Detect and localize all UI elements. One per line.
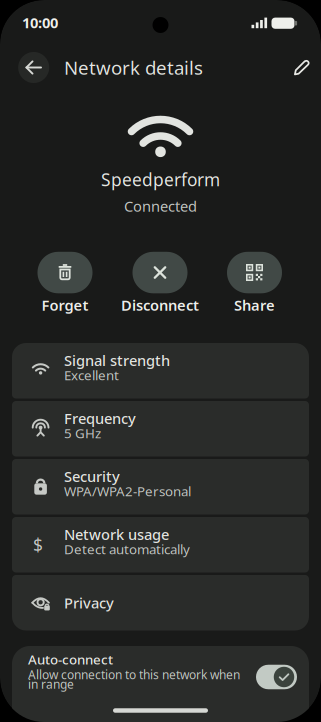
button[interactable]: Auto-connect bbox=[256, 665, 297, 689]
staticText: Privacy bbox=[64, 593, 114, 612]
staticText: in range bbox=[28, 676, 74, 692]
button[interactable]: Share bbox=[227, 252, 282, 315]
staticText: Auto-connect bbox=[28, 650, 113, 668]
button[interactable]: $ bbox=[12, 517, 309, 572]
button[interactable]: Signal strength bbox=[12, 343, 309, 398]
staticText: Excellent bbox=[64, 366, 119, 384]
button[interactable]: Edit bbox=[285, 51, 317, 83]
button[interactable]: Frequency bbox=[12, 401, 309, 456]
staticText: Network details bbox=[64, 55, 203, 80]
staticText: Allow connection to this network when bbox=[28, 667, 240, 683]
button[interactable]: Security bbox=[12, 459, 309, 514]
button[interactable]: Disconnect bbox=[121, 252, 199, 315]
button[interactable]: Forget bbox=[37, 252, 92, 315]
staticText: 5 GHz bbox=[64, 424, 101, 442]
button[interactable]: Auto-connect bbox=[12, 646, 309, 722]
button[interactable]: Back bbox=[18, 52, 49, 83]
staticText: $ bbox=[33, 533, 43, 556]
staticText: WPA/WPA2-Personal bbox=[64, 482, 191, 500]
staticText: 10:00 bbox=[22, 13, 58, 32]
staticText: Signal strength bbox=[64, 351, 170, 370]
staticText: Speedperform bbox=[101, 168, 220, 191]
staticText: Detect automatically bbox=[64, 540, 190, 558]
staticText: Frequency bbox=[64, 409, 136, 428]
button[interactable]: Privacy bbox=[12, 575, 309, 630]
staticText: Security bbox=[64, 467, 120, 486]
staticText: Connected bbox=[124, 196, 197, 216]
staticText: Forget bbox=[41, 295, 88, 315]
staticText: Network usage bbox=[64, 525, 169, 544]
staticText: Disconnect bbox=[121, 295, 199, 315]
staticText: Share bbox=[234, 295, 275, 315]
